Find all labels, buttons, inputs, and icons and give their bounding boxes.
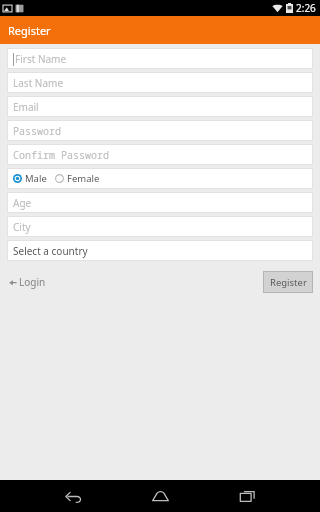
button[interactable]: First Name [7, 48, 313, 69]
button[interactable]: Last Name [7, 72, 313, 93]
button[interactable]: City [7, 216, 313, 237]
staticText: First Name [15, 52, 67, 66]
button[interactable]: Password [7, 120, 313, 141]
button[interactable]: Confirm Password [7, 144, 313, 165]
button[interactable]: Home [139, 480, 181, 512]
button[interactable]: Age [7, 192, 313, 213]
staticText: Select a country [13, 244, 88, 258]
staticText: Female [67, 172, 100, 185]
staticText: Email [13, 100, 39, 114]
staticText: City [13, 220, 31, 234]
staticText: Confirm Password [13, 148, 109, 162]
staticText: 2:26 [296, 1, 316, 15]
staticText: Male [25, 172, 47, 185]
button[interactable]: Email [7, 96, 313, 117]
button[interactable]: Female [54, 170, 101, 187]
button[interactable]: Back [52, 480, 94, 512]
button[interactable]: Recent apps [226, 480, 268, 512]
staticText: Register [270, 276, 307, 289]
button[interactable]: Male [12, 170, 48, 187]
button[interactable]: Login [7, 272, 48, 292]
staticText: Register [8, 23, 51, 38]
button[interactable]: Select a country [7, 240, 313, 261]
staticText: Login [19, 275, 46, 289]
staticText: Age [13, 196, 32, 210]
staticText: Password [13, 124, 61, 138]
staticText: Last Name [13, 76, 64, 90]
button[interactable]: Register [263, 271, 313, 293]
